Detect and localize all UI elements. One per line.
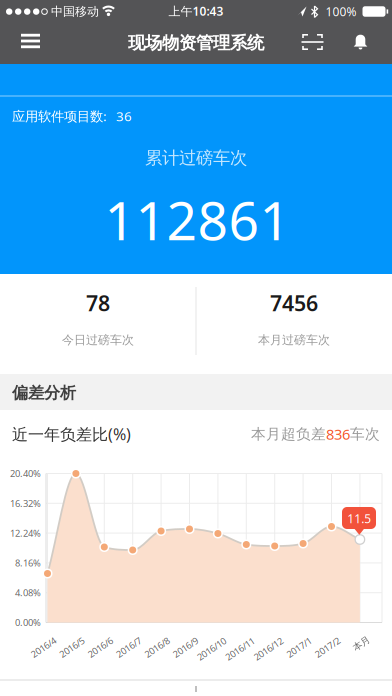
staticText: 本月 [352, 638, 370, 649]
staticText: 8.16% [15, 557, 41, 569]
staticText: 中国移动 [51, 4, 99, 19]
staticText: 现场物资管理系统 [128, 32, 264, 54]
staticText: 2016/10 [195, 643, 228, 655]
staticText: 2016/5 [58, 641, 86, 653]
staticText: 2016/7 [115, 641, 143, 653]
staticText: 2016/12 [252, 643, 285, 655]
staticText: 836 [326, 424, 350, 444]
staticText: 0.00% [15, 616, 41, 629]
staticText: 16.32% [10, 497, 41, 509]
staticText: 112861 [104, 184, 290, 255]
staticText: 2016/4 [29, 641, 57, 653]
staticText: 2017/1 [285, 641, 313, 653]
staticText: 偏差分析 [12, 383, 76, 403]
staticText: 本月过磅车次 [258, 333, 330, 347]
staticText: 2016/6 [86, 641, 114, 653]
staticText: 7456 [270, 289, 318, 317]
staticText: 上午10:43 [168, 3, 223, 19]
staticText: 2016/11 [223, 643, 256, 655]
button[interactable] [338, 23, 382, 61]
staticText: 4.08% [15, 586, 41, 599]
staticText: 累计过磅车次 [145, 147, 247, 169]
staticText: 今日过磅车次 [62, 333, 134, 347]
staticText: 2016/9 [171, 641, 199, 653]
staticText: 本月超负差 [251, 425, 326, 443]
staticText: 100% [325, 3, 356, 19]
staticText: 应用软件项目数: 36 [12, 107, 132, 125]
staticText: 11.5 [347, 510, 371, 526]
button[interactable] [8, 20, 52, 64]
staticText: 20.40% [10, 467, 41, 480]
button[interactable]: 应用软件项目数: 36 [12, 107, 380, 125]
staticText: 车次 [350, 425, 380, 443]
staticText: 78 [86, 289, 110, 317]
staticText: 2017/2 [313, 641, 341, 653]
staticText: 近一年负差比(%) [12, 423, 131, 445]
staticText: 12.24% [10, 527, 41, 539]
button[interactable] [290, 23, 334, 61]
staticText: 2016/8 [143, 641, 171, 653]
